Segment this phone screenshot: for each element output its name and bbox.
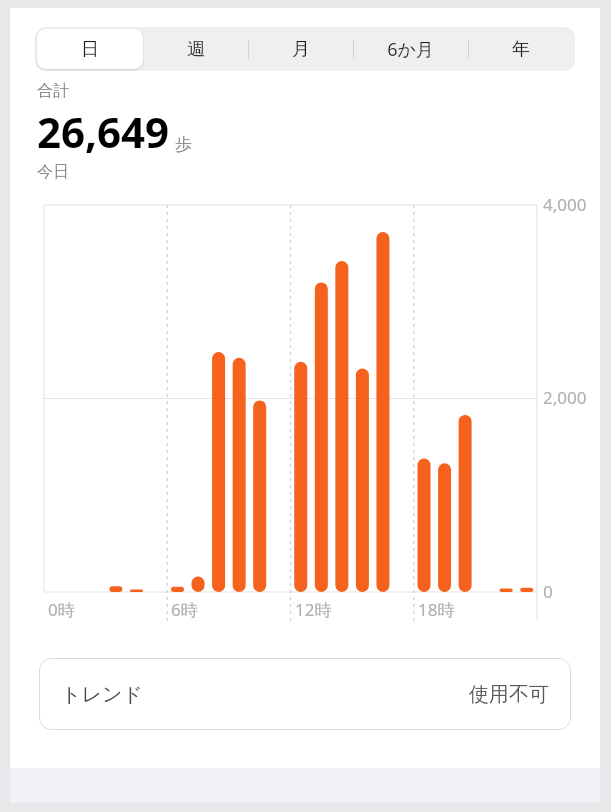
staticText: 使用不可 — [469, 682, 549, 707]
staticText: トレンド — [61, 682, 143, 707]
staticText: 4,000 — [543, 193, 587, 216]
staticText: 12時 — [295, 598, 332, 621]
button[interactable]: トレンド — [39, 658, 571, 730]
button[interactable]: 週 — [143, 29, 248, 69]
button[interactable]: 6か月 — [353, 29, 468, 69]
staticText: 18時 — [418, 598, 455, 621]
staticText: 26,649 — [37, 103, 170, 160]
staticText: 日 — [81, 38, 99, 61]
staticText: 合計 — [37, 81, 69, 101]
staticText: 0時 — [48, 598, 75, 621]
staticText: 年 — [512, 38, 530, 61]
staticText: 週 — [187, 38, 205, 61]
button[interactable]: 月 — [248, 29, 353, 69]
staticText: 月 — [292, 38, 310, 61]
staticText: 6時 — [171, 598, 198, 621]
button[interactable]: 年 — [468, 29, 573, 69]
button[interactable]: 日 — [37, 29, 143, 69]
staticText: 歩 — [175, 134, 192, 155]
staticText: 2,000 — [543, 386, 587, 409]
staticText: 6か月 — [387, 37, 434, 62]
staticText: 0 — [543, 580, 553, 603]
staticText: 今日 — [37, 162, 69, 182]
